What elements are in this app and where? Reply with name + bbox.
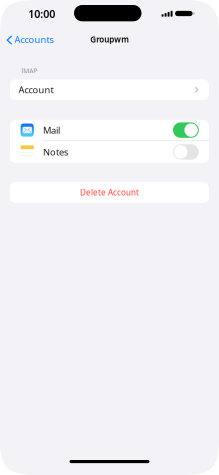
- button[interactable]: Account: [10, 79, 209, 100]
- staticText: IMAP: [21, 66, 37, 75]
- button[interactable]: Delete Account: [10, 182, 209, 203]
- staticText: Groupwm: [90, 34, 129, 45]
- staticText: Account: [18, 83, 53, 96]
- button[interactable]: Notes: [10, 141, 209, 163]
- button[interactable]: Mail: [10, 120, 209, 140]
- staticText: 10:00: [28, 7, 55, 21]
- staticText: Accounts: [14, 33, 53, 45]
- staticText: Delete Account: [80, 187, 139, 198]
- button[interactable]: Accounts: [2, 31, 58, 50]
- staticText: Mail: [43, 124, 60, 136]
- staticText: Notes: [43, 146, 68, 158]
